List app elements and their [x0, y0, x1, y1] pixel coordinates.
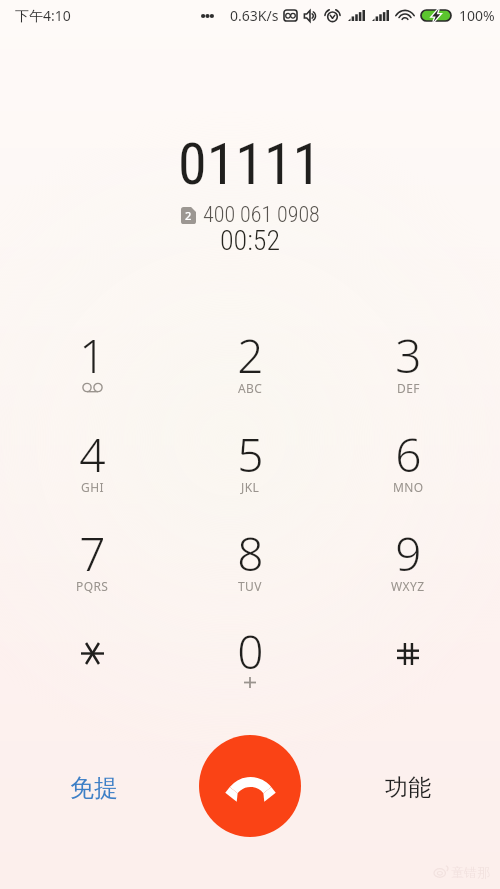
staticText: 00:52 [220, 224, 281, 257]
staticText: 400 061 0908 [203, 202, 320, 228]
staticText: TUV [238, 578, 262, 594]
staticText: 5 [237, 423, 264, 486]
button[interactable]: 7 [40, 518, 144, 612]
staticText: 7 [79, 522, 106, 585]
staticText: 01111 [178, 130, 322, 198]
staticText: 童错那 [451, 864, 490, 880]
button[interactable]: 6 [356, 419, 460, 513]
staticText: 2 [185, 208, 192, 223]
button[interactable]: 免提 [36, 765, 152, 811]
button[interactable] [40, 617, 144, 711]
staticText: WXYZ [391, 578, 425, 594]
staticText: JKL [241, 479, 260, 495]
staticText: 8 [237, 522, 264, 585]
button[interactable]: 2 [198, 320, 302, 414]
staticText: 1 [79, 324, 106, 387]
staticText: 100% [459, 6, 495, 25]
staticText: 0.63K/s [230, 6, 279, 25]
button[interactable]: 0 [198, 617, 302, 711]
staticText: DEF [397, 380, 420, 396]
staticText: PQRS [76, 578, 109, 594]
staticText: 6 [395, 423, 422, 486]
staticText: GHI [81, 479, 104, 495]
staticText: 2 [237, 324, 264, 387]
staticText: 免提 [70, 773, 118, 803]
staticText: 9 [395, 522, 422, 585]
button[interactable]: 功能 [350, 764, 466, 810]
staticText: ABC [238, 380, 263, 396]
staticText: 4 [79, 423, 106, 486]
button[interactable]: 5 [198, 419, 302, 513]
button[interactable] [356, 617, 460, 711]
button[interactable]: 1 [40, 320, 144, 414]
staticText: 功能 [385, 773, 431, 802]
button[interactable]: 3 [356, 320, 460, 414]
button[interactable]: 8 [198, 518, 302, 612]
staticText: 3 [395, 324, 422, 387]
button[interactable]: End call [199, 735, 301, 837]
button[interactable]: 9 [356, 518, 460, 612]
staticText: 下午4:10 [15, 6, 71, 25]
staticText: MNO [393, 479, 424, 495]
button[interactable]: 4 [40, 419, 144, 513]
staticText: 0 [237, 620, 264, 683]
